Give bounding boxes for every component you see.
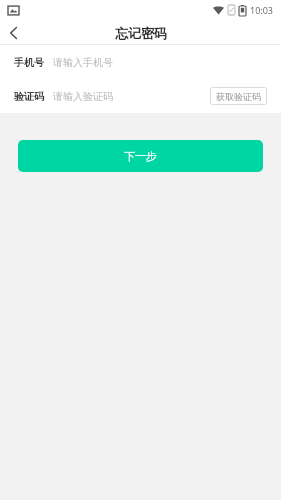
button[interactable]: 获取验证码 — [210, 87, 267, 105]
staticText: 10:03 — [250, 4, 274, 16]
staticText: 验证码 — [14, 90, 44, 103]
button[interactable]: 下一步 — [18, 140, 263, 172]
button[interactable]: 手机号 — [0, 45, 281, 79]
staticText: 手机号 — [14, 56, 44, 69]
button[interactable]: 验证码 — [14, 79, 210, 113]
staticText: 下一步 — [124, 149, 157, 163]
staticText: 请输入验证码 — [53, 90, 113, 103]
button[interactable]: Back — [0, 20, 26, 45]
staticText: 忘记密码 — [115, 25, 167, 41]
staticText: 获取验证码 — [216, 91, 261, 102]
staticText: 请输入手机号 — [53, 56, 113, 69]
